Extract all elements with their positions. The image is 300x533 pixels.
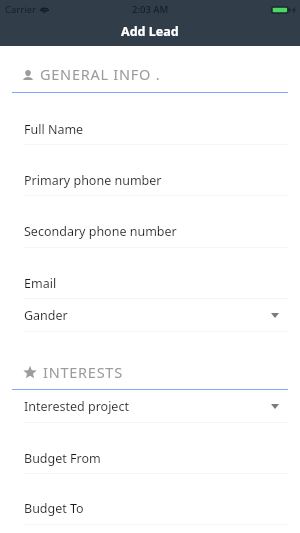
staticText: Gander [24, 307, 68, 324]
staticText: 2:03 AM [132, 3, 169, 16]
button[interactable]: Budget To [0, 497, 300, 519]
staticText: Full Name [24, 121, 84, 138]
staticText: Carrier [5, 3, 36, 16]
staticText: Secondary phone number [24, 223, 177, 240]
button[interactable]: Email [0, 272, 300, 294]
button[interactable]: Interested project [0, 395, 300, 417]
staticText: Primary phone number [24, 172, 162, 189]
button[interactable]: Primary phone number [0, 169, 300, 191]
staticText: Email [24, 275, 57, 292]
staticText: Budget From [24, 450, 101, 467]
button[interactable]: Secondary phone number [0, 220, 300, 242]
staticText: Budget To [24, 500, 84, 517]
staticText: INTERESTS [43, 362, 123, 382]
button[interactable]: Gander [0, 304, 300, 326]
button[interactable]: Budget From [0, 447, 300, 469]
staticText: Add Lead [121, 23, 179, 40]
staticText: GENERAL INFO . [40, 64, 161, 84]
staticText: Interested project [24, 398, 129, 415]
button[interactable]: Full Name [0, 118, 300, 140]
